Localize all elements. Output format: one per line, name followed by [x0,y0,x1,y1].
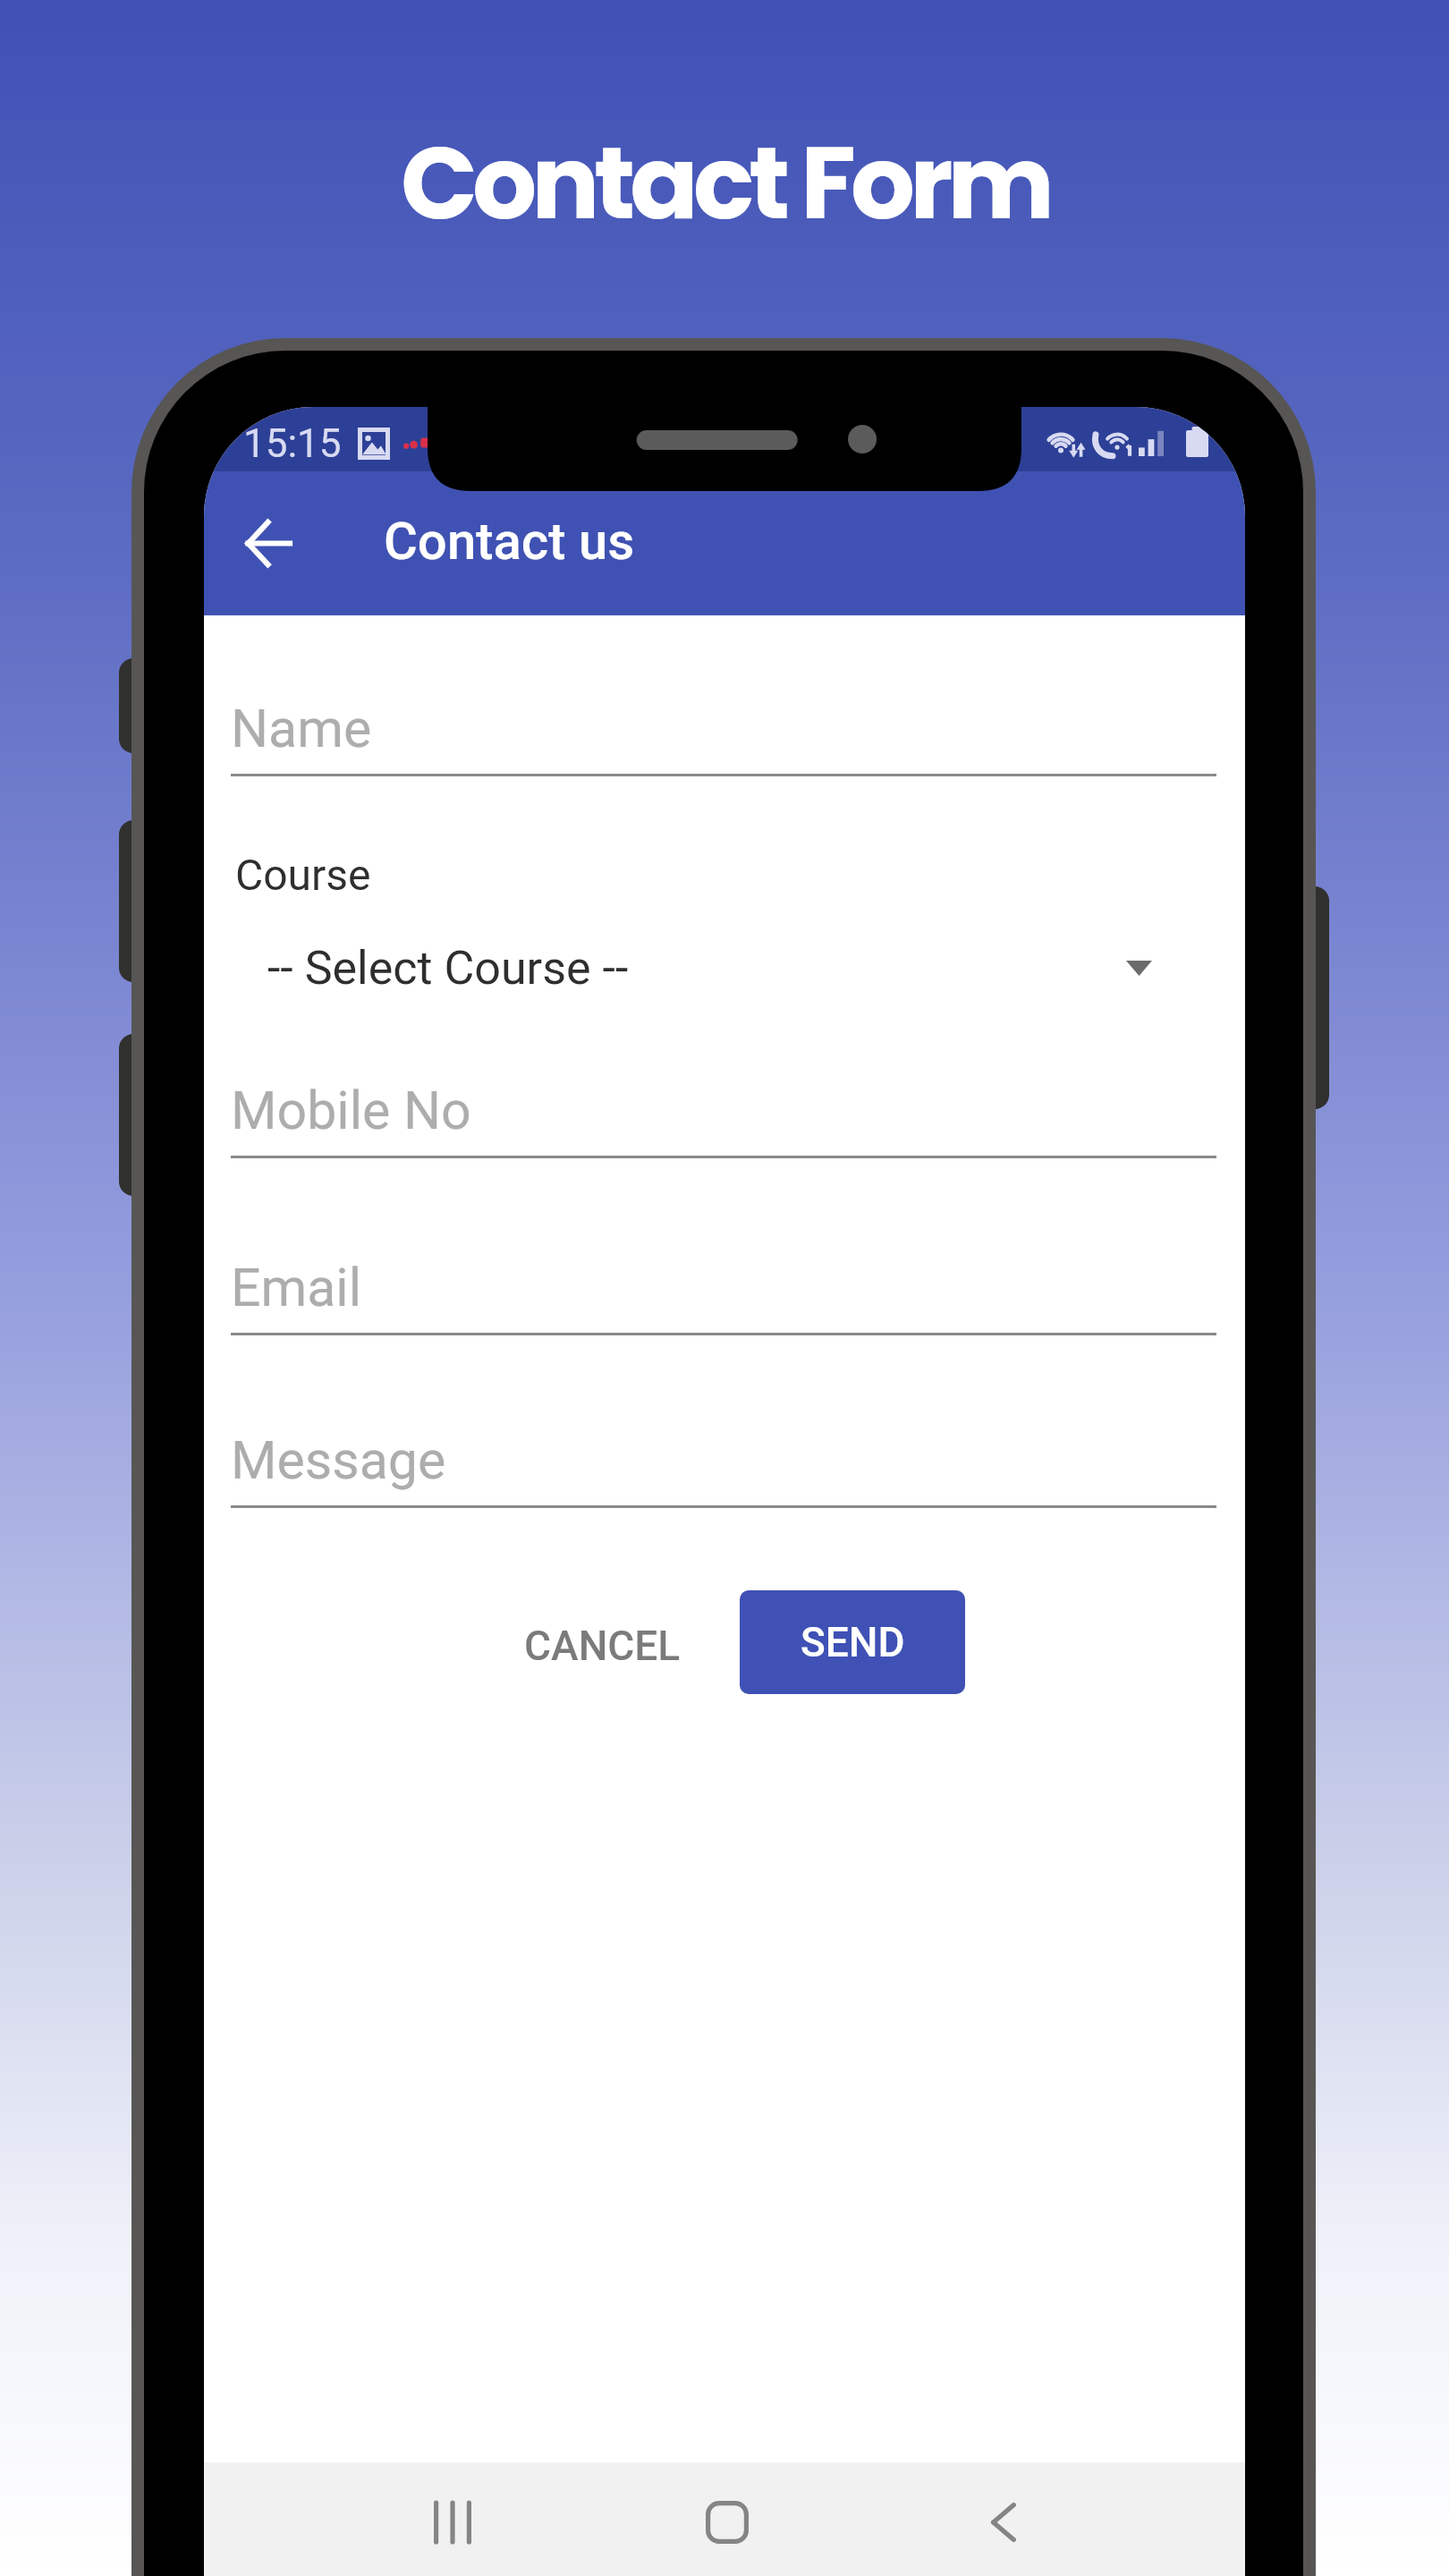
staticText: Mobile No [231,1080,471,1141]
staticText: Email [231,1257,362,1318]
staticText: Contact us [384,511,635,572]
staticText: Course [235,850,371,900]
staticText: SEND [801,1618,905,1666]
staticText: CANCEL [524,1622,681,1670]
button[interactable]: Recent apps [399,2478,506,2567]
button[interactable]: CANCEL [490,1594,714,1698]
button[interactable]: SEND [740,1590,965,1694]
staticText: Name [231,698,372,759]
button[interactable]: Home [674,2478,781,2567]
staticText: Contact Form [401,112,1049,253]
button[interactable]: Back [225,501,309,585]
staticText: 15:15 [243,420,342,467]
button[interactable]: Back [950,2478,1057,2567]
staticText: -- Select Course -- [267,941,629,996]
staticText: Message [231,1429,446,1491]
button[interactable]: -- Select Course -- [267,926,1152,1010]
